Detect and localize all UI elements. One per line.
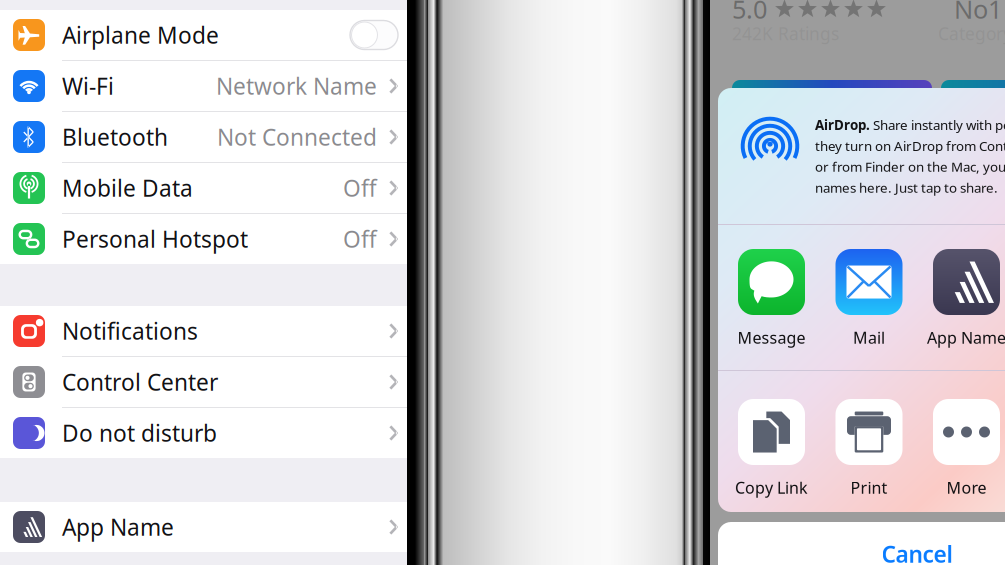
staticText: Notifications bbox=[62, 316, 198, 346]
staticText: they turn on AirDrop from Control Center… bbox=[815, 137, 1005, 155]
button[interactable]: App Name bbox=[0, 502, 412, 552]
staticText: Bluetooth bbox=[62, 122, 168, 152]
button[interactable]: Airplane Mode bbox=[0, 10, 412, 60]
staticText: 5.0 bbox=[732, 0, 767, 26]
staticText: Mail bbox=[853, 327, 885, 348]
staticText: Off bbox=[343, 224, 377, 254]
staticText: Personal Hotspot bbox=[62, 224, 248, 254]
staticText: Message bbox=[737, 327, 805, 348]
staticText: Cancel bbox=[881, 539, 952, 565]
staticText: Copy Link bbox=[735, 477, 808, 498]
staticText: Airplane Mode bbox=[62, 20, 219, 50]
staticText: or from Finder on the Mac, you'll see th… bbox=[815, 158, 1005, 175]
button[interactable]: Cancel bbox=[718, 522, 1005, 565]
button[interactable]: Do not disturb bbox=[0, 408, 412, 458]
button[interactable]: Wi-Fi bbox=[0, 61, 412, 111]
staticText: No1 bbox=[954, 0, 1002, 26]
staticText: More bbox=[946, 477, 986, 498]
button[interactable]: Mail bbox=[834, 249, 904, 341]
button[interactable]: Personal Hotspot bbox=[0, 214, 412, 264]
staticText: AirDrop. bbox=[815, 116, 870, 134]
staticText: Not Connected bbox=[217, 122, 377, 152]
button[interactable]: App Name bbox=[931, 249, 1001, 341]
button[interactable]: Print bbox=[834, 399, 904, 491]
button[interactable]: Bluetooth bbox=[0, 112, 412, 162]
staticText: Share instantly with people nearby. If bbox=[870, 116, 1005, 134]
button[interactable]: More bbox=[931, 399, 1001, 491]
staticText: Do not disturb bbox=[62, 418, 217, 448]
staticText: Off bbox=[343, 173, 377, 203]
button[interactable]: Message bbox=[736, 249, 806, 341]
staticText: Mobile Data bbox=[62, 173, 193, 203]
button[interactable]: Notifications bbox=[0, 306, 412, 356]
staticText: Control Center bbox=[62, 367, 218, 397]
button[interactable]: Mobile Data bbox=[0, 163, 412, 213]
staticText: App Name bbox=[927, 327, 1005, 348]
staticText: Network Name bbox=[216, 71, 377, 101]
button[interactable]: Copy Link bbox=[736, 399, 806, 491]
staticText: Wi-Fi bbox=[62, 71, 114, 101]
staticText: Print bbox=[850, 477, 887, 498]
staticText: names here. Just tap to share. bbox=[815, 179, 998, 196]
staticText: App Name bbox=[62, 512, 174, 542]
button[interactable]: Control Center bbox=[0, 357, 412, 407]
